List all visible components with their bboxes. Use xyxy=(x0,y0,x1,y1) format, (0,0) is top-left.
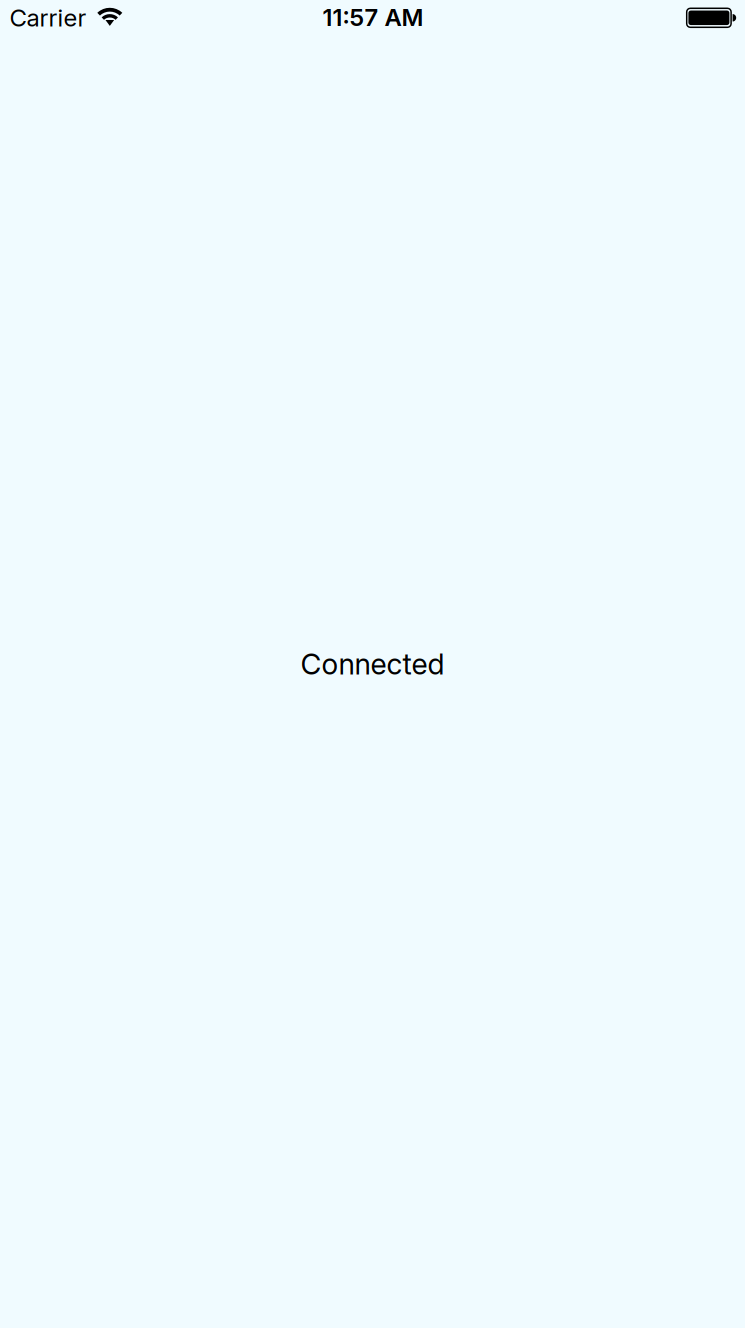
staticText: Connected xyxy=(300,647,444,681)
staticText: Carrier xyxy=(9,3,86,32)
staticText: 11:57 AM xyxy=(322,3,423,32)
